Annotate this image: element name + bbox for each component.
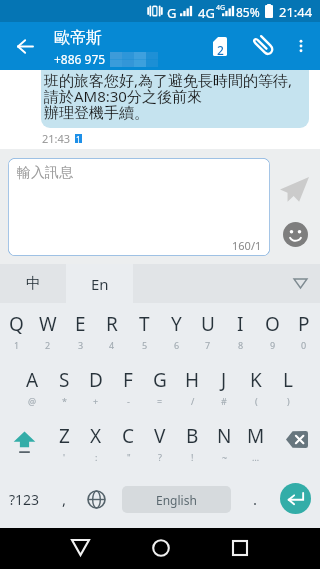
staticText: Q — [9, 311, 24, 337]
button[interactable]: Enter — [280, 483, 311, 514]
button[interactable]: O — [256, 303, 288, 359]
staticText: = — [157, 395, 163, 407]
staticText: J — [221, 367, 227, 393]
staticText: I — [237, 311, 244, 337]
button[interactable]: I — [224, 303, 256, 359]
staticText: 8 — [238, 339, 244, 351]
staticText: 9 — [270, 339, 276, 351]
staticText: 6 — [174, 339, 180, 351]
button[interactable]: 輸入訊息 — [8, 158, 270, 256]
staticText: 中 — [26, 274, 41, 293]
button[interactable]: U — [192, 303, 224, 359]
button[interactable]: Shift — [0, 415, 48, 471]
staticText: W — [39, 311, 57, 337]
staticText: , — [62, 489, 67, 509]
button[interactable]: Back — [55, 528, 105, 569]
staticText: : — [95, 451, 98, 463]
button[interactable]: V — [144, 415, 176, 471]
button[interactable]: M — [240, 415, 272, 471]
button[interactable]: D — [80, 359, 112, 415]
staticText: ?123 — [9, 490, 40, 509]
staticText: P — [298, 311, 310, 337]
button[interactable]: K — [240, 359, 272, 415]
staticText: / — [191, 395, 195, 407]
staticText: T — [139, 311, 150, 337]
button[interactable]: G — [144, 359, 176, 415]
button[interactable]: , — [48, 471, 80, 527]
staticText: B — [186, 423, 199, 449]
button[interactable]: C — [112, 415, 144, 471]
button[interactable]: 班的旅客您好,為了避免長時間的等待, 請於AM8:30分之後前來 辦理登機手續。 — [41, 70, 309, 128]
staticText: En — [91, 274, 109, 294]
button[interactable]: P — [288, 303, 320, 359]
staticText: 班的旅客您好,為了避免長時間的等待, 請於AM8:30分之後前來 辦理登機手續。 — [44, 70, 293, 122]
staticText: 85% — [236, 4, 260, 20]
staticText: G — [167, 4, 177, 22]
staticText: V — [154, 423, 166, 449]
button[interactable]: E — [64, 303, 96, 359]
button[interactable]: A — [16, 359, 48, 415]
button[interactable]: Q — [0, 303, 32, 359]
button[interactable]: En — [66, 264, 133, 303]
button[interactable]: X — [80, 415, 112, 471]
staticText: C — [122, 423, 135, 449]
staticText: 2 — [45, 339, 51, 351]
button[interactable]: F — [112, 359, 144, 415]
staticText: 1 — [14, 339, 20, 351]
staticText: A — [26, 367, 39, 393]
staticText: F — [123, 367, 133, 393]
staticText: 5 — [142, 339, 148, 351]
button[interactable]: English — [122, 486, 231, 513]
button[interactable]: Back — [1, 22, 49, 70]
button[interactable]: Z — [48, 415, 80, 471]
staticText: E — [75, 311, 86, 337]
button[interactable]: R — [96, 303, 128, 359]
staticText: English — [156, 492, 197, 508]
button[interactable]: J — [208, 359, 240, 415]
button[interactable]: Attach — [240, 22, 282, 70]
staticText: + — [93, 395, 99, 407]
button[interactable]: L — [272, 359, 304, 415]
staticText: 21:44 — [279, 3, 313, 21]
button[interactable]: 中 — [0, 264, 66, 303]
button[interactable]: B — [176, 415, 208, 471]
button[interactable]: SIM 2 — [200, 22, 240, 70]
staticText: " — [127, 451, 131, 463]
staticText: 160/1 — [232, 238, 262, 253]
staticText: X — [90, 423, 102, 449]
button[interactable]: H — [176, 359, 208, 415]
button[interactable]: . — [239, 471, 271, 527]
button[interactable]: T — [128, 303, 160, 359]
button[interactable]: More options — [282, 22, 320, 70]
staticText: * — [62, 395, 67, 407]
button[interactable]: Home — [136, 528, 186, 569]
staticText: K — [250, 367, 262, 393]
staticText: O — [265, 311, 280, 337]
staticText: 1 — [76, 134, 81, 143]
button[interactable]: W — [32, 303, 64, 359]
staticText: ( — [255, 395, 258, 407]
button[interactable]: Backspace — [272, 415, 320, 471]
staticText: # — [221, 395, 227, 407]
button[interactable]: S — [48, 359, 80, 415]
button[interactable]: Emoji — [283, 222, 308, 247]
staticText: D — [89, 367, 103, 393]
staticText: ~ — [222, 451, 228, 463]
staticText: Z — [59, 423, 70, 449]
staticText: 4G — [216, 3, 226, 13]
button[interactable]: N — [208, 415, 240, 471]
button[interactable]: ?123 — [0, 471, 48, 527]
button[interactable]: Send — [277, 173, 311, 207]
staticText: 7 — [205, 339, 211, 351]
staticText: 21:43 — [42, 131, 71, 146]
staticText: H — [185, 367, 200, 393]
staticText: 4G — [198, 4, 215, 22]
button[interactable]: Recents — [215, 528, 265, 569]
button[interactable]: Y — [160, 303, 192, 359]
staticText: ! — [191, 451, 194, 463]
staticText: Y — [171, 311, 182, 337]
staticText: S — [59, 367, 70, 393]
button[interactable]: Change keyboard — [80, 471, 112, 527]
button[interactable]: Expand keyboard — [280, 264, 320, 303]
staticText: ? — [158, 451, 162, 463]
